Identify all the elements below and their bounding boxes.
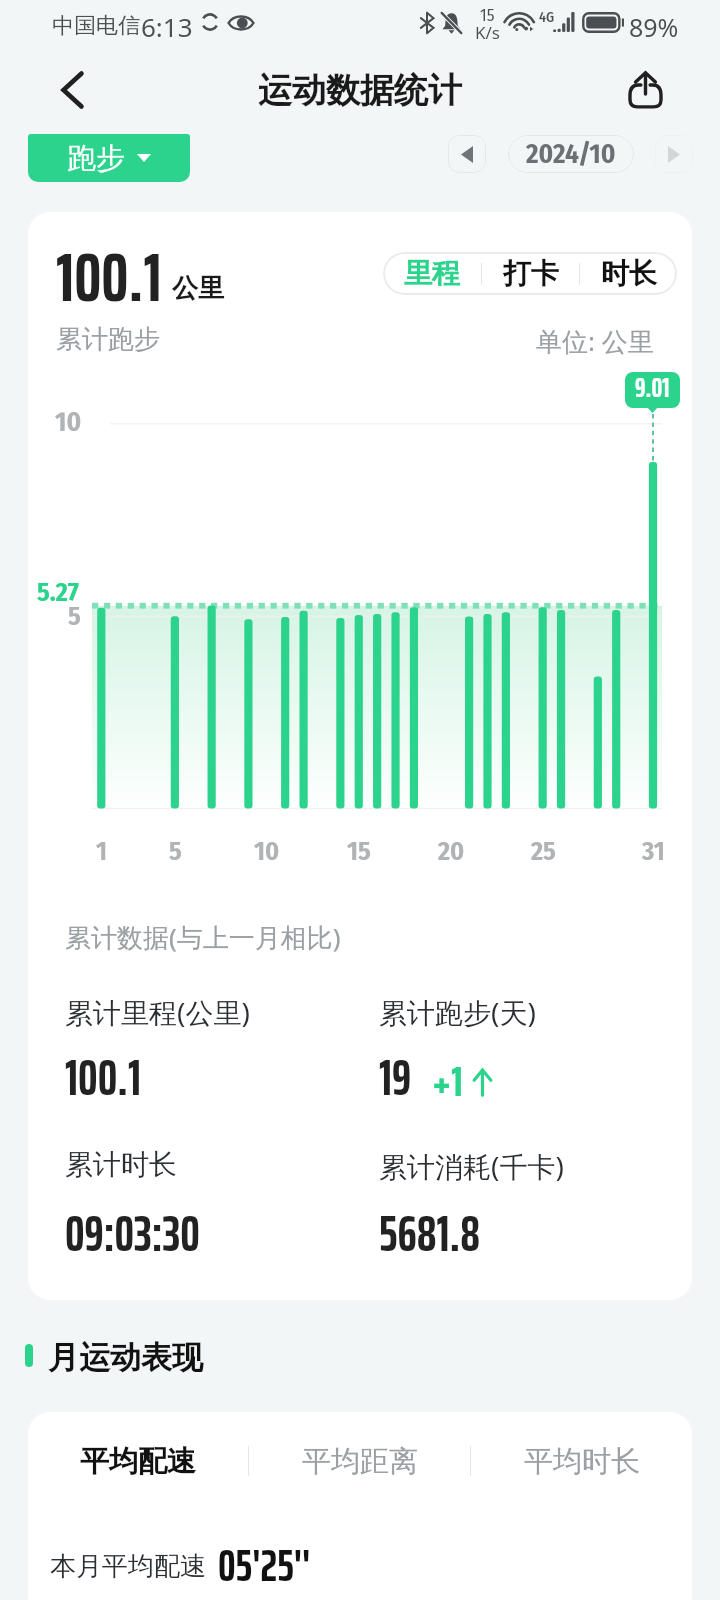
staticText: 平均配速 <box>80 1443 196 1480</box>
staticText: 累计时长 <box>65 1147 177 1182</box>
staticText: 9.01 <box>635 372 670 402</box>
staticText: 1 <box>96 836 107 867</box>
staticText: +1 <box>432 1047 463 1115</box>
button[interactable]: 平均时长 <box>471 1431 692 1491</box>
button[interactable]: Next month <box>655 135 693 173</box>
staticText: 打卡 <box>503 256 559 291</box>
staticText: 10 <box>55 406 82 438</box>
staticText: 5681.8 <box>379 1195 481 1272</box>
staticText: 100.1 <box>65 1039 142 1116</box>
staticText: 2024/10 <box>526 138 616 170</box>
staticText: 5 <box>169 836 182 867</box>
staticText: 累计跑步 <box>56 323 160 356</box>
staticText: 5.27 <box>37 577 79 608</box>
staticText: 跑步 <box>67 140 125 177</box>
staticText: 15 <box>480 5 495 25</box>
button[interactable]: 2024/10 <box>508 135 634 173</box>
staticText: 累计数据(与上一月相比) <box>65 919 341 955</box>
staticText: 累计消耗(千卡) <box>379 1147 564 1185</box>
staticText: 25 <box>531 836 556 867</box>
staticText: 里程 <box>404 256 460 291</box>
staticText: 5 <box>68 601 81 632</box>
staticText: 平均距离 <box>302 1443 418 1480</box>
button[interactable]: 平均距离 <box>249 1431 470 1491</box>
staticText: 15 <box>347 836 371 867</box>
staticText: 6:13 <box>141 9 193 44</box>
button[interactable]: Back <box>47 65 97 115</box>
button[interactable]: 平均配速 <box>28 1431 248 1491</box>
staticText: 时长 <box>601 256 657 291</box>
button[interactable]: Share <box>620 64 670 114</box>
staticText: 平均时长 <box>524 1443 640 1480</box>
staticText: 月运动表现 <box>48 1338 203 1377</box>
staticText: 公里 <box>172 272 224 305</box>
button[interactable]: 里程 <box>383 252 481 295</box>
staticText: K/s <box>475 21 500 44</box>
staticText: 10 <box>254 836 280 867</box>
staticText: 本月平均配速 <box>50 1550 206 1583</box>
staticText: 单位: 公里 <box>536 323 654 359</box>
staticText: 20 <box>438 836 465 867</box>
staticText: 19 <box>379 1039 412 1116</box>
staticText: 累计跑步(天) <box>379 993 536 1031</box>
button[interactable]: 打卡 <box>482 252 579 295</box>
button[interactable]: 跑步 <box>28 134 190 182</box>
staticText: 运动数据统计 <box>258 69 462 112</box>
button[interactable]: Previous month <box>448 135 486 173</box>
staticText: 中国电信 <box>52 12 140 40</box>
button[interactable]: 时长 <box>580 252 677 295</box>
staticText: 100.1 <box>56 224 162 331</box>
staticText: 4G <box>539 9 555 26</box>
staticText: 31 <box>642 836 665 867</box>
staticText: 累计里程(公里) <box>65 993 250 1031</box>
staticText: 05'25'' <box>218 1531 311 1600</box>
staticText: 09:03:30 <box>65 1195 200 1272</box>
staticText: 89% <box>629 10 679 44</box>
